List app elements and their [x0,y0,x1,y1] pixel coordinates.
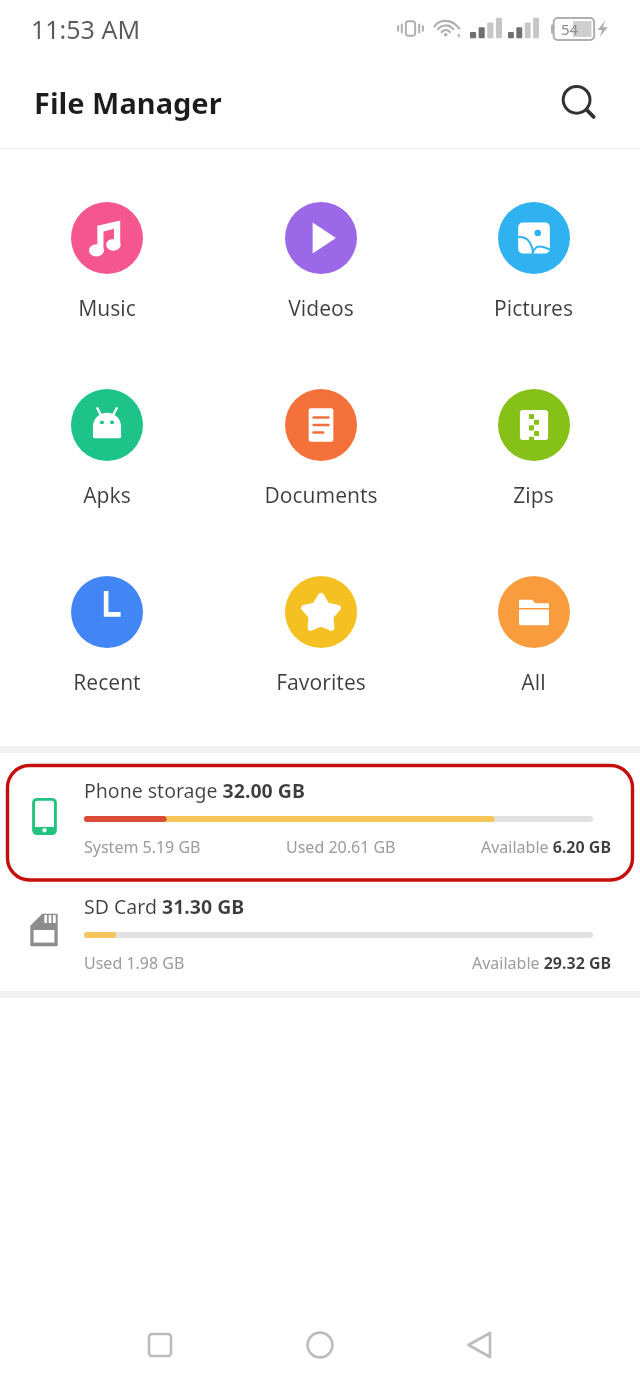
staticText: Favorites [276,668,366,697]
button[interactable]: Documents [214,389,427,510]
staticText: SD Card 31.30 GB [84,893,245,920]
staticText: 54 [561,19,579,39]
button[interactable]: Videos [214,202,427,323]
staticText: Used 1.98 GB [84,952,185,974]
staticText: Recent [73,668,141,697]
staticText: Documents [264,481,378,510]
staticText: Used 20.61 GB [286,836,396,858]
button[interactable]: All [427,576,640,697]
staticText: Videos [288,294,354,323]
button[interactable]: SD Card 31.30 GB [0,875,640,991]
button[interactable]: Back [433,1302,527,1388]
staticText: Music [78,294,136,323]
staticText: Available 6.20 GB [481,836,612,858]
button[interactable]: Home [273,1302,367,1388]
button[interactable]: Zips [427,389,640,510]
button[interactable]: Music [0,202,214,323]
staticText: Apks [83,481,131,510]
button[interactable]: Recent [0,576,214,697]
button[interactable]: Recent apps [113,1302,207,1388]
staticText: Zips [513,481,554,510]
button[interactable]: Apks [0,389,214,510]
staticText: All [521,668,546,697]
button[interactable]: Pictures [427,202,640,323]
staticText: Pictures [494,294,573,323]
button[interactable]: Search [554,78,604,128]
staticText: File Manager [34,83,222,122]
button[interactable]: Phone storage 32.00 GB [0,759,640,875]
button[interactable]: Favorites [214,576,427,697]
staticText: 11:53 AM [31,12,141,46]
staticText: System 5.19 GB [84,836,201,858]
staticText: Phone storage 32.00 GB [84,777,305,804]
staticText: Available 29.32 GB [472,952,612,974]
